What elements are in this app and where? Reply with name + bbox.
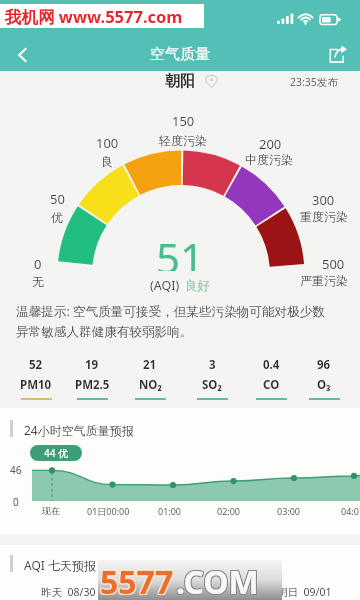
- staticText: .COM: [176, 560, 259, 600]
- staticText: 300: [312, 191, 335, 209]
- staticText: 5577: [99, 559, 173, 599]
- staticText: 50: [50, 190, 65, 208]
- staticText: 我机网 www.5577.com: [5, 5, 183, 28]
- staticText: NO₂: [139, 377, 162, 393]
- staticText: .COM: [175, 561, 258, 600]
- staticText: 200: [259, 135, 282, 153]
- staticText: 中度污染: [245, 152, 293, 167]
- staticText: 昨天 08/30: [41, 585, 96, 599]
- staticText: CO: [263, 377, 280, 393]
- staticText: 优: [51, 210, 63, 225]
- staticText: 朝阳: [165, 72, 195, 91]
- staticText: 01:00: [158, 505, 182, 517]
- staticText: 5577: [100, 560, 174, 600]
- staticText: 46: [10, 463, 22, 477]
- staticText: 明日 09/01: [277, 585, 332, 599]
- staticText: 04:0: [341, 505, 359, 517]
- staticText: 21: [143, 357, 157, 373]
- staticText: 轻度污染: [159, 133, 207, 148]
- staticText: 5577: [99, 561, 173, 600]
- button[interactable]: 昨天 08/30: [23, 585, 113, 599]
- staticText: 23:35发布: [290, 75, 338, 89]
- staticText: 01日00:00: [87, 505, 130, 517]
- staticText: 100: [96, 134, 119, 152]
- staticText: 96: [317, 357, 331, 373]
- staticText: 3: [209, 357, 216, 373]
- staticText: .COM: [177, 561, 260, 600]
- staticText: AQI 七天预报: [24, 557, 96, 573]
- button[interactable]: 今天 08/31: [137, 585, 227, 599]
- staticText: 重度污染: [300, 209, 348, 224]
- button[interactable]: 明日 09/01: [259, 585, 349, 599]
- staticText: 今天 08/31: [155, 585, 210, 599]
- staticText: 51: [156, 229, 205, 271]
- button[interactable]: Share: [314, 38, 360, 71]
- staticText: 无: [32, 274, 44, 289]
- staticText: (AQI): [150, 277, 180, 294]
- staticText: 5577: [101, 559, 175, 599]
- staticText: PM2.5: [75, 377, 110, 393]
- staticText: 良好: [185, 278, 210, 294]
- staticText: PM10: [20, 377, 52, 393]
- staticText: O₃: [317, 377, 331, 393]
- staticText: 19: [85, 357, 99, 373]
- staticText: .COM: [177, 559, 260, 599]
- button[interactable]: Back: [0, 38, 46, 71]
- staticText: 空气质量: [150, 45, 210, 64]
- staticText: 500: [322, 255, 345, 273]
- staticText: 02:00: [217, 505, 241, 517]
- staticText: 现在: [42, 505, 60, 516]
- staticText: 24小时空气质量预报: [24, 422, 134, 438]
- staticText: SO₂: [202, 377, 222, 393]
- staticText: .COM: [175, 559, 258, 599]
- staticText: 0.4: [263, 357, 280, 373]
- staticText: 5577: [101, 561, 175, 600]
- staticText: 52: [29, 357, 43, 373]
- staticText: 150: [172, 112, 195, 130]
- staticText: 良: [101, 154, 113, 169]
- button[interactable]: 44 优: [30, 445, 82, 461]
- staticText: 温馨提示: 空气质量可接受，但某些污染物可能对极少数 异常敏感人群健康有较弱影响…: [16, 303, 325, 339]
- staticText: 严重污染: [300, 273, 348, 288]
- staticText: 0: [34, 255, 42, 273]
- staticText: 03:00: [277, 505, 301, 517]
- staticText: 0: [13, 495, 19, 509]
- staticText: 44 优: [44, 446, 69, 460]
